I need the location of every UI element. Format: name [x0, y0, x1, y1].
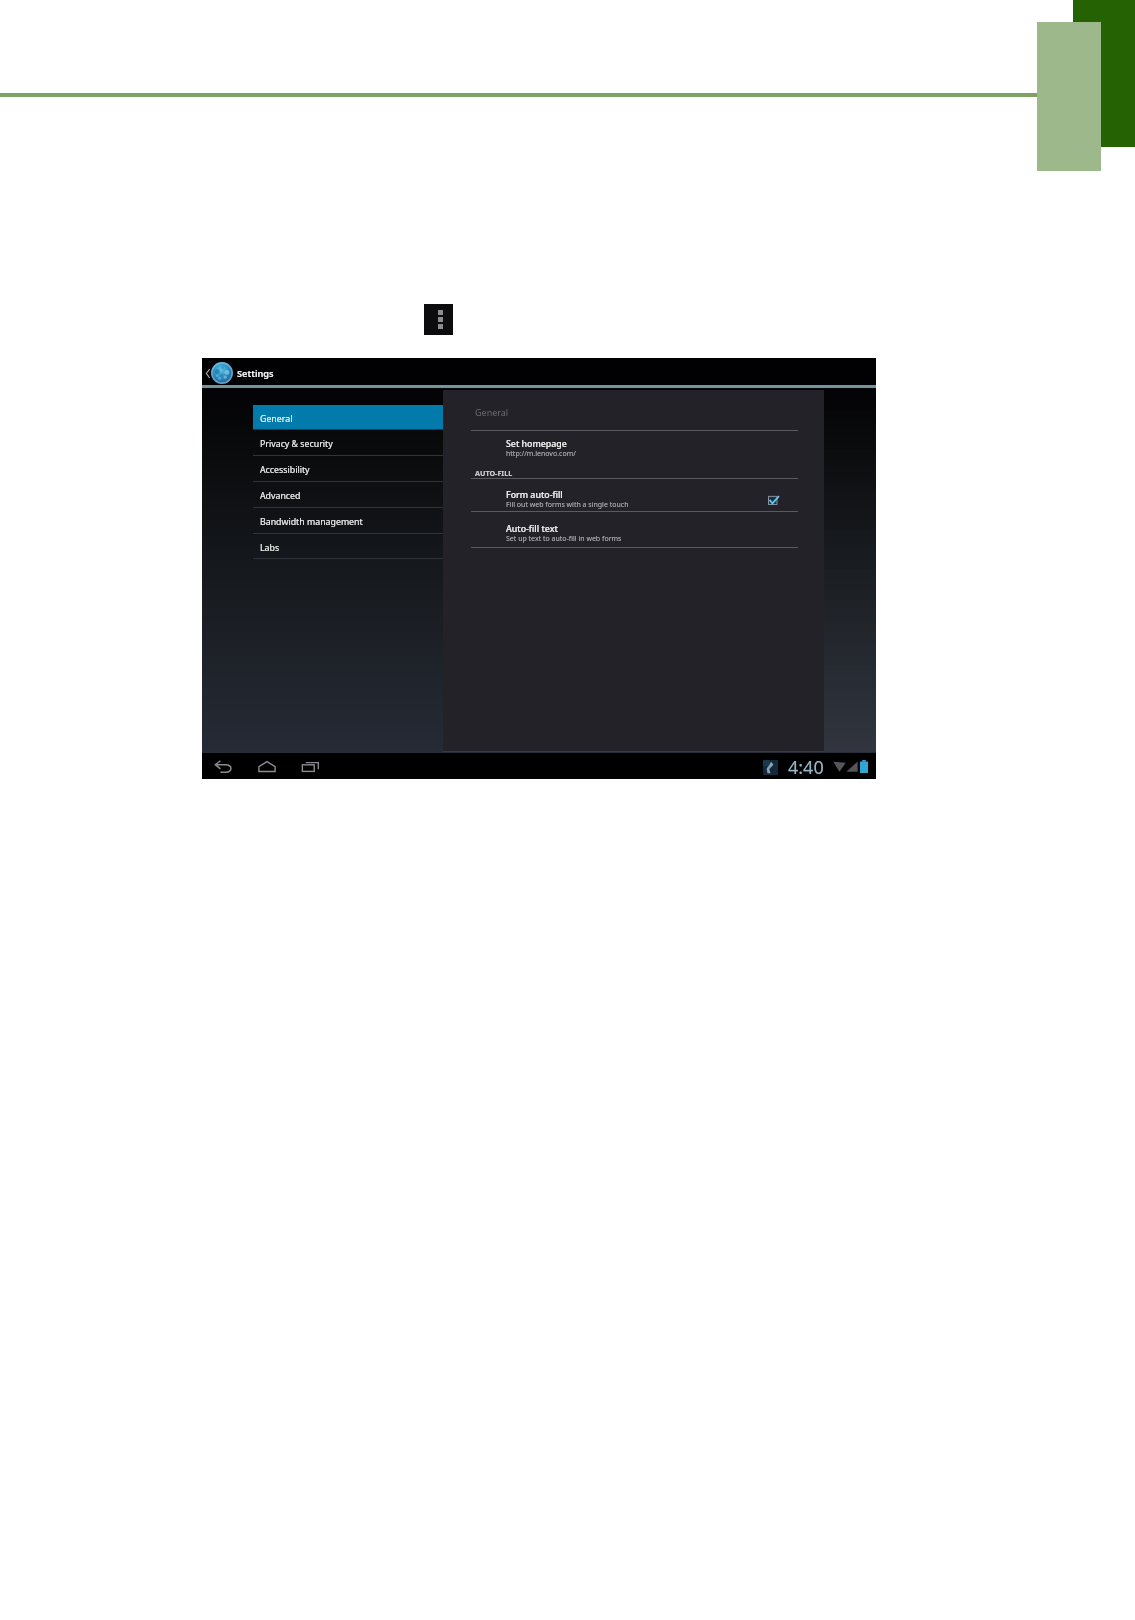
staticText: Accessibility — [260, 464, 310, 476]
staticText: 4:40 — [788, 755, 824, 780]
staticText: Bandwidth management — [260, 516, 363, 528]
staticText: General — [260, 413, 293, 425]
staticText: Fill out web forms with a single touch — [506, 500, 629, 510]
button[interactable]: Labs — [253, 533, 443, 559]
button[interactable]: General — [253, 405, 443, 429]
staticText: Set homepage — [506, 438, 567, 450]
button[interactable]: Privacy & security — [253, 429, 443, 455]
button[interactable]: Form auto-fill toggle — [768, 493, 781, 506]
button[interactable]: Notifications — [763, 760, 778, 775]
staticText: Form auto-fill — [506, 489, 563, 501]
staticText: Auto-fill text — [506, 523, 558, 535]
staticText: Set up text to auto-fill in web forms — [506, 534, 622, 544]
button[interactable]: Home — [254, 753, 280, 779]
staticText: Advanced — [260, 490, 301, 502]
staticText: Settings — [237, 367, 274, 380]
button[interactable] — [471, 511, 798, 547]
button[interactable]: More options — [424, 304, 453, 335]
button[interactable]: Back — [211, 753, 237, 779]
staticText: Privacy & security — [260, 438, 333, 450]
staticText: AUTO-FILL — [475, 468, 513, 478]
staticText: http://m.lenovo.com/ — [506, 449, 576, 459]
button[interactable]: Advanced — [253, 481, 443, 507]
staticText: General — [475, 406, 509, 418]
button[interactable]: Bandwidth management — [253, 507, 443, 533]
button[interactable]: Recent apps — [297, 753, 323, 779]
staticText: Labs — [260, 542, 280, 554]
button[interactable]: Back — [203, 364, 212, 383]
button[interactable] — [471, 478, 798, 510]
button[interactable]: Accessibility — [253, 455, 443, 481]
button[interactable] — [471, 430, 798, 478]
